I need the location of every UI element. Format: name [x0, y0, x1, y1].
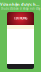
staticText: TIN NÓNG — [13, 17, 27, 20]
staticText: Vừa nhận được hôm nay — [0, 2, 41, 7]
staticText: thuốc đã bán ở khắp nơi đây — [1, 7, 40, 10]
